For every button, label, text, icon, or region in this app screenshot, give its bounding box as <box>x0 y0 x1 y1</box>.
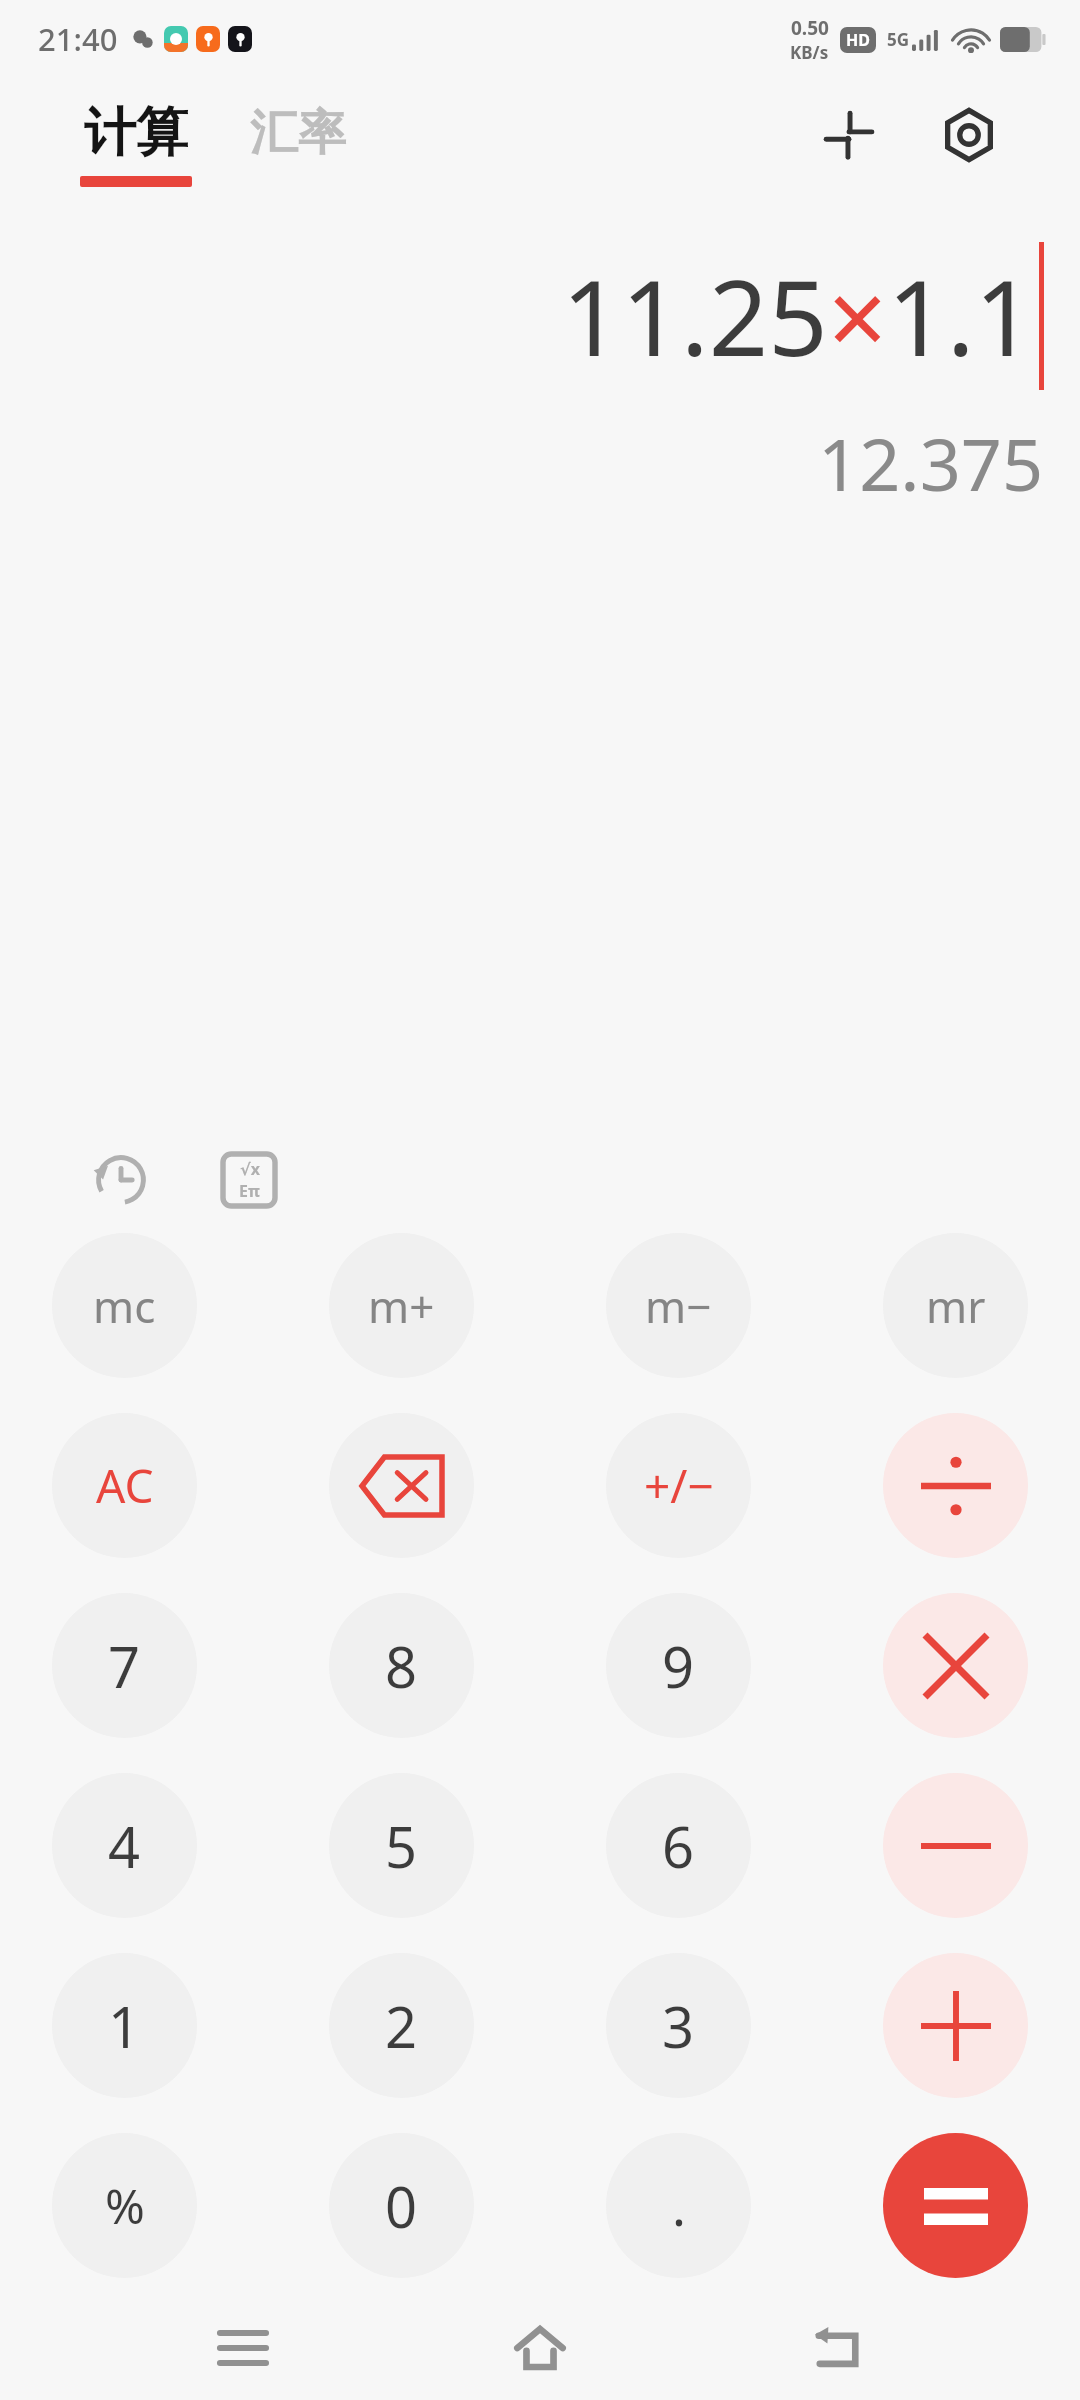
button[interactable]: % <box>52 2133 197 2278</box>
button[interactable]: Collapse <box>806 92 892 178</box>
button[interactable]: 7 <box>52 1593 197 1738</box>
staticText: 6 <box>662 1808 695 1884</box>
staticText: 5 <box>385 1808 418 1884</box>
staticText: KB/s <box>790 41 829 64</box>
button[interactable]: Recents <box>188 2296 298 2400</box>
button[interactable]: Settings <box>926 92 1012 178</box>
button[interactable]: 8 <box>329 1593 474 1738</box>
staticText: √x <box>240 1158 260 1180</box>
staticText: 8 <box>385 1628 418 1704</box>
staticText: 12.375 <box>818 414 1044 512</box>
staticText: 3 <box>662 1988 695 2064</box>
button[interactable]: History <box>82 1141 160 1219</box>
staticText: 2 <box>385 1988 418 2064</box>
staticText: . <box>672 2170 686 2241</box>
staticText: mr <box>926 1276 986 1336</box>
button[interactable]: 6 <box>606 1773 751 1918</box>
button[interactable] <box>883 1413 1028 1558</box>
button[interactable]: +/− <box>606 1413 751 1558</box>
staticText: mc <box>93 1276 156 1336</box>
button[interactable]: 0 <box>329 2133 474 2278</box>
staticText: 0 <box>385 2168 418 2244</box>
button[interactable]: 5 <box>329 1773 474 1918</box>
staticText: 5G <box>887 28 910 51</box>
staticText: % <box>105 2173 145 2238</box>
button[interactable]: m− <box>606 1233 751 1378</box>
staticText: 0.50 <box>791 15 829 41</box>
button[interactable]: 2 <box>329 1953 474 2098</box>
staticText: 9 <box>662 1628 695 1704</box>
button[interactable]: Back <box>783 2296 893 2400</box>
button[interactable]: . <box>606 2133 751 2278</box>
staticText: AC <box>96 1454 154 1517</box>
staticText: +/− <box>644 1454 714 1517</box>
staticText: m+ <box>368 1276 435 1336</box>
staticText: 4 <box>108 1808 141 1884</box>
button[interactable]: Home <box>485 2296 595 2400</box>
staticText: 汇率 <box>250 103 346 163</box>
staticText: 21:40 <box>38 18 118 60</box>
staticText: 计算 <box>84 100 188 166</box>
button[interactable]: AC <box>52 1413 197 1558</box>
button[interactable]: 计算 <box>80 100 192 187</box>
button[interactable]: 1 <box>52 1953 197 2098</box>
button[interactable] <box>883 1953 1028 2098</box>
button[interactable]: 3 <box>606 1953 751 2098</box>
button[interactable]: Scientific <box>210 1141 288 1219</box>
button[interactable]: mc <box>52 1233 197 1378</box>
staticText: m− <box>645 1276 712 1336</box>
button[interactable] <box>883 1593 1028 1738</box>
button[interactable] <box>883 2133 1028 2278</box>
button[interactable]: 汇率 <box>250 103 346 163</box>
button[interactable]: 4 <box>52 1773 197 1918</box>
staticText: 1 <box>108 1988 141 2064</box>
staticText: 11.25×1.1 <box>561 245 1034 387</box>
staticText: Eπ <box>239 1180 260 1202</box>
staticText: HD <box>846 29 870 51</box>
button[interactable]: m+ <box>329 1233 474 1378</box>
button[interactable]: 9 <box>606 1593 751 1738</box>
button[interactable]: mr <box>883 1233 1028 1378</box>
staticText: 7 <box>108 1628 141 1704</box>
button[interactable] <box>883 1773 1028 1918</box>
button[interactable]: Backspace <box>329 1413 474 1558</box>
